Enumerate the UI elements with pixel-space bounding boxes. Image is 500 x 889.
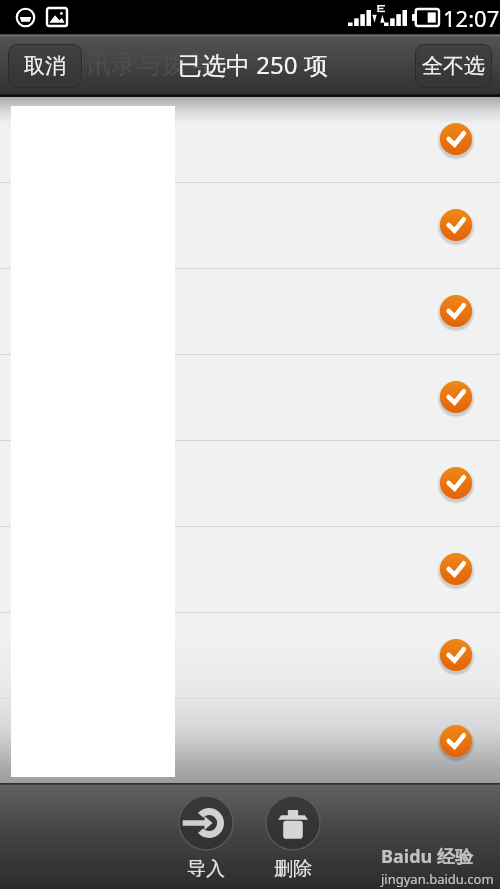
button[interactable]: Delete xyxy=(265,795,321,881)
button[interactable]: Selected xyxy=(0,97,500,183)
staticText: 已选中 250 项 xyxy=(178,48,328,81)
staticText: 12:07 xyxy=(443,3,500,33)
button[interactable]: Selected xyxy=(434,720,478,764)
button[interactable]: Selected xyxy=(0,613,500,699)
button[interactable]: Selected xyxy=(434,462,478,506)
button[interactable]: Selected xyxy=(434,548,478,592)
staticText: 全不选 xyxy=(422,53,485,79)
button[interactable]: 取消 xyxy=(8,44,82,88)
button[interactable]: Import xyxy=(178,795,234,881)
staticText: 通讯录与拨号 xyxy=(61,49,211,80)
button[interactable]: Selected xyxy=(0,527,500,613)
button[interactable]: Selected xyxy=(0,269,500,355)
staticText: 取消 xyxy=(24,53,66,79)
staticText: jingyan.baidu.com xyxy=(381,870,494,888)
staticText: 导入 xyxy=(187,857,225,881)
button[interactable]: Selected xyxy=(0,183,500,269)
button[interactable]: Selected xyxy=(434,204,478,248)
staticText: 删除 xyxy=(274,857,312,881)
button[interactable]: Selected xyxy=(434,376,478,420)
button[interactable]: Selected xyxy=(0,441,500,527)
staticText: Baidu 经验 xyxy=(381,844,473,869)
button[interactable]: Selected xyxy=(0,699,500,785)
button[interactable]: Selected xyxy=(434,118,478,162)
button[interactable]: Selected xyxy=(434,634,478,678)
button[interactable]: 全不选 xyxy=(415,44,492,88)
button[interactable]: Selected xyxy=(434,290,478,334)
button[interactable]: Selected xyxy=(0,355,500,441)
